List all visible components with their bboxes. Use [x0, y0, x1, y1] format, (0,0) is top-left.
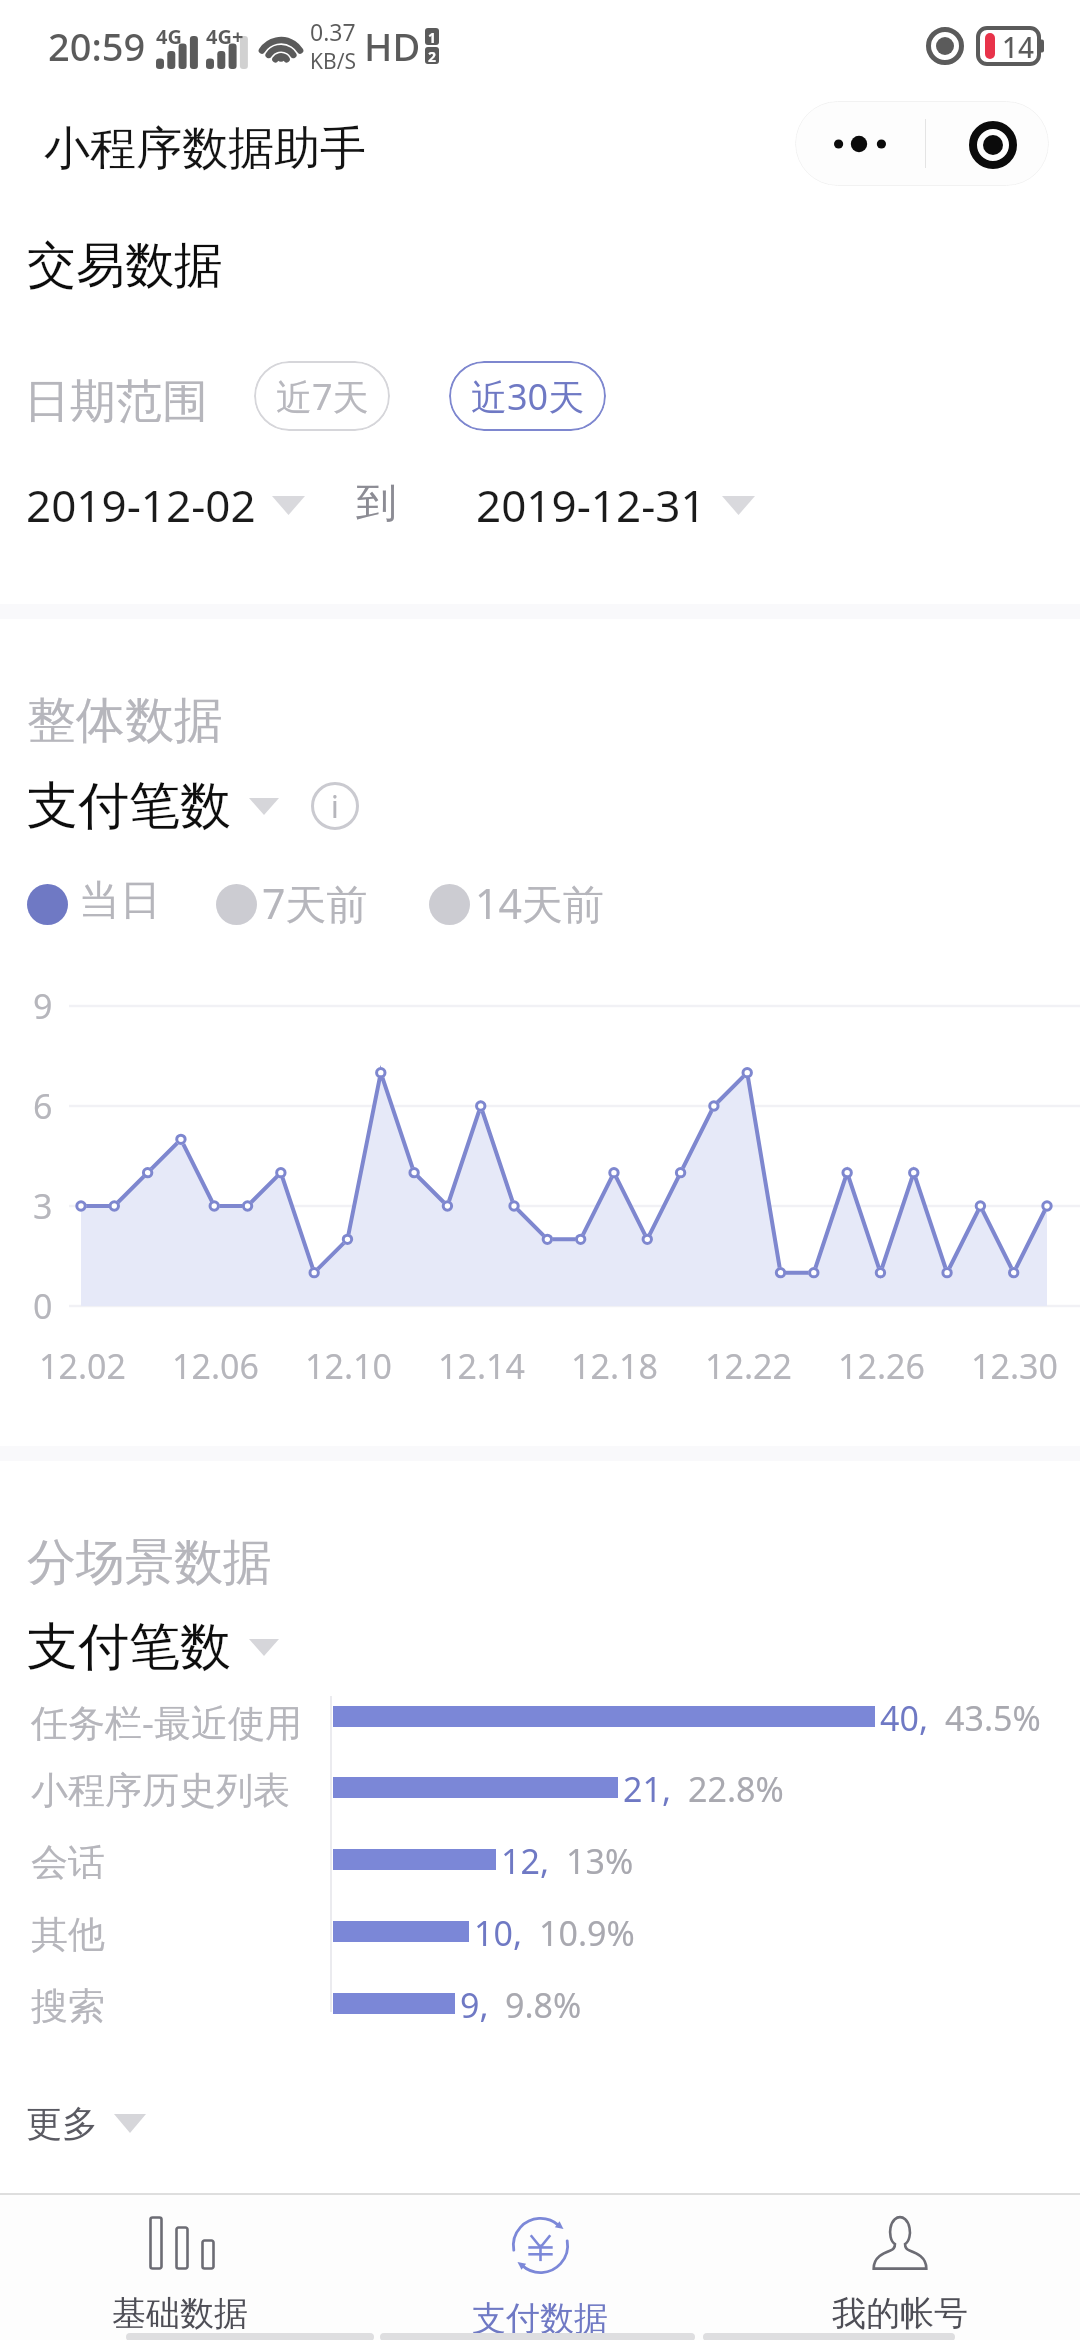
staticText: 2 [428, 47, 437, 64]
button[interactable]: 我的帐号 [720, 2194, 1080, 2340]
staticText: 4G+ [206, 23, 244, 50]
staticText: 6 [33, 1083, 53, 1129]
staticText: 近30天 [471, 372, 585, 421]
staticText: 40, [880, 1695, 929, 1741]
staticText: 9.8% [505, 1982, 582, 2028]
staticText: 1 [428, 28, 437, 45]
staticText: 12.02 [39, 1343, 126, 1389]
staticText: 22.8% [688, 1766, 784, 1812]
staticText: 分场景数据 [27, 1532, 272, 1594]
button[interactable]: Close mini program [926, 101, 1049, 186]
staticText: 更多 [26, 2101, 98, 2146]
staticText: 4G [156, 23, 182, 50]
staticText: 支付数据 [472, 2297, 608, 2340]
staticText: 小程序历史列表 [31, 1767, 290, 1814]
button[interactable]: 近7天 [254, 361, 390, 431]
staticText: 12.26 [838, 1343, 925, 1389]
staticText: 20:59 [48, 20, 146, 72]
button[interactable]: 更多 [26, 2101, 146, 2146]
staticText: KB/S [310, 47, 356, 76]
staticText: 12, [501, 1838, 550, 1884]
button[interactable]: 基础数据 [0, 2194, 360, 2340]
staticText: 2019-12-31 [476, 475, 706, 535]
staticText: 其他 [31, 1911, 105, 1958]
staticText: 日期范围 [24, 373, 208, 431]
staticText: 0.37 [310, 16, 356, 47]
staticText: 9 [33, 983, 53, 1029]
staticText: 0 [33, 1283, 53, 1329]
staticText: 基础数据 [112, 2292, 248, 2335]
staticText: 到 [356, 478, 397, 530]
staticText: 14 [1002, 28, 1035, 64]
staticText: 当日 [79, 875, 161, 927]
staticText: 21, [623, 1766, 672, 1812]
button[interactable]: More options [795, 101, 925, 186]
staticText: 7天前 [262, 875, 368, 931]
staticText: 我的帐号 [832, 2292, 968, 2335]
staticText: 43.5% [945, 1695, 1041, 1741]
staticText: 10.9% [539, 1910, 635, 1956]
staticText: 近7天 [276, 372, 369, 421]
staticText: 会话 [31, 1839, 105, 1886]
staticText: 支付笔数 [27, 774, 231, 838]
button[interactable]: 2019-12-31 [476, 475, 755, 535]
staticText: 交易数据 [27, 235, 223, 297]
button[interactable]: 支付数据 [360, 2194, 720, 2340]
other: Info [311, 782, 359, 830]
button[interactable]: 2019-12-02 [26, 475, 305, 535]
staticText: 2019-12-02 [26, 475, 256, 535]
staticText: 任务栏-最近使用 [31, 1696, 302, 1747]
staticText: 3 [33, 1183, 53, 1229]
staticText: 14天前 [475, 875, 604, 931]
staticText: 小程序数据助手 [44, 120, 366, 178]
staticText: 9, [460, 1982, 489, 2028]
staticText: 12.18 [571, 1343, 658, 1389]
staticText: 12.30 [971, 1343, 1058, 1389]
staticText: i [331, 786, 339, 827]
staticText: 12.22 [705, 1343, 792, 1389]
staticText: 支付笔数 [27, 1615, 231, 1679]
staticText: 12.10 [305, 1343, 392, 1389]
staticText: 搜索 [31, 1983, 105, 2030]
button[interactable]: 支付笔数 [27, 1615, 279, 1679]
staticText: 10, [474, 1910, 523, 1956]
staticText: 13% [566, 1838, 634, 1884]
staticText: 整体数据 [27, 690, 223, 752]
staticText: 12.06 [172, 1343, 259, 1389]
button[interactable]: 支付笔数 [27, 774, 359, 838]
staticText: 12.14 [438, 1343, 525, 1389]
button[interactable]: 近30天 [449, 361, 606, 431]
staticText: HD [364, 20, 421, 72]
